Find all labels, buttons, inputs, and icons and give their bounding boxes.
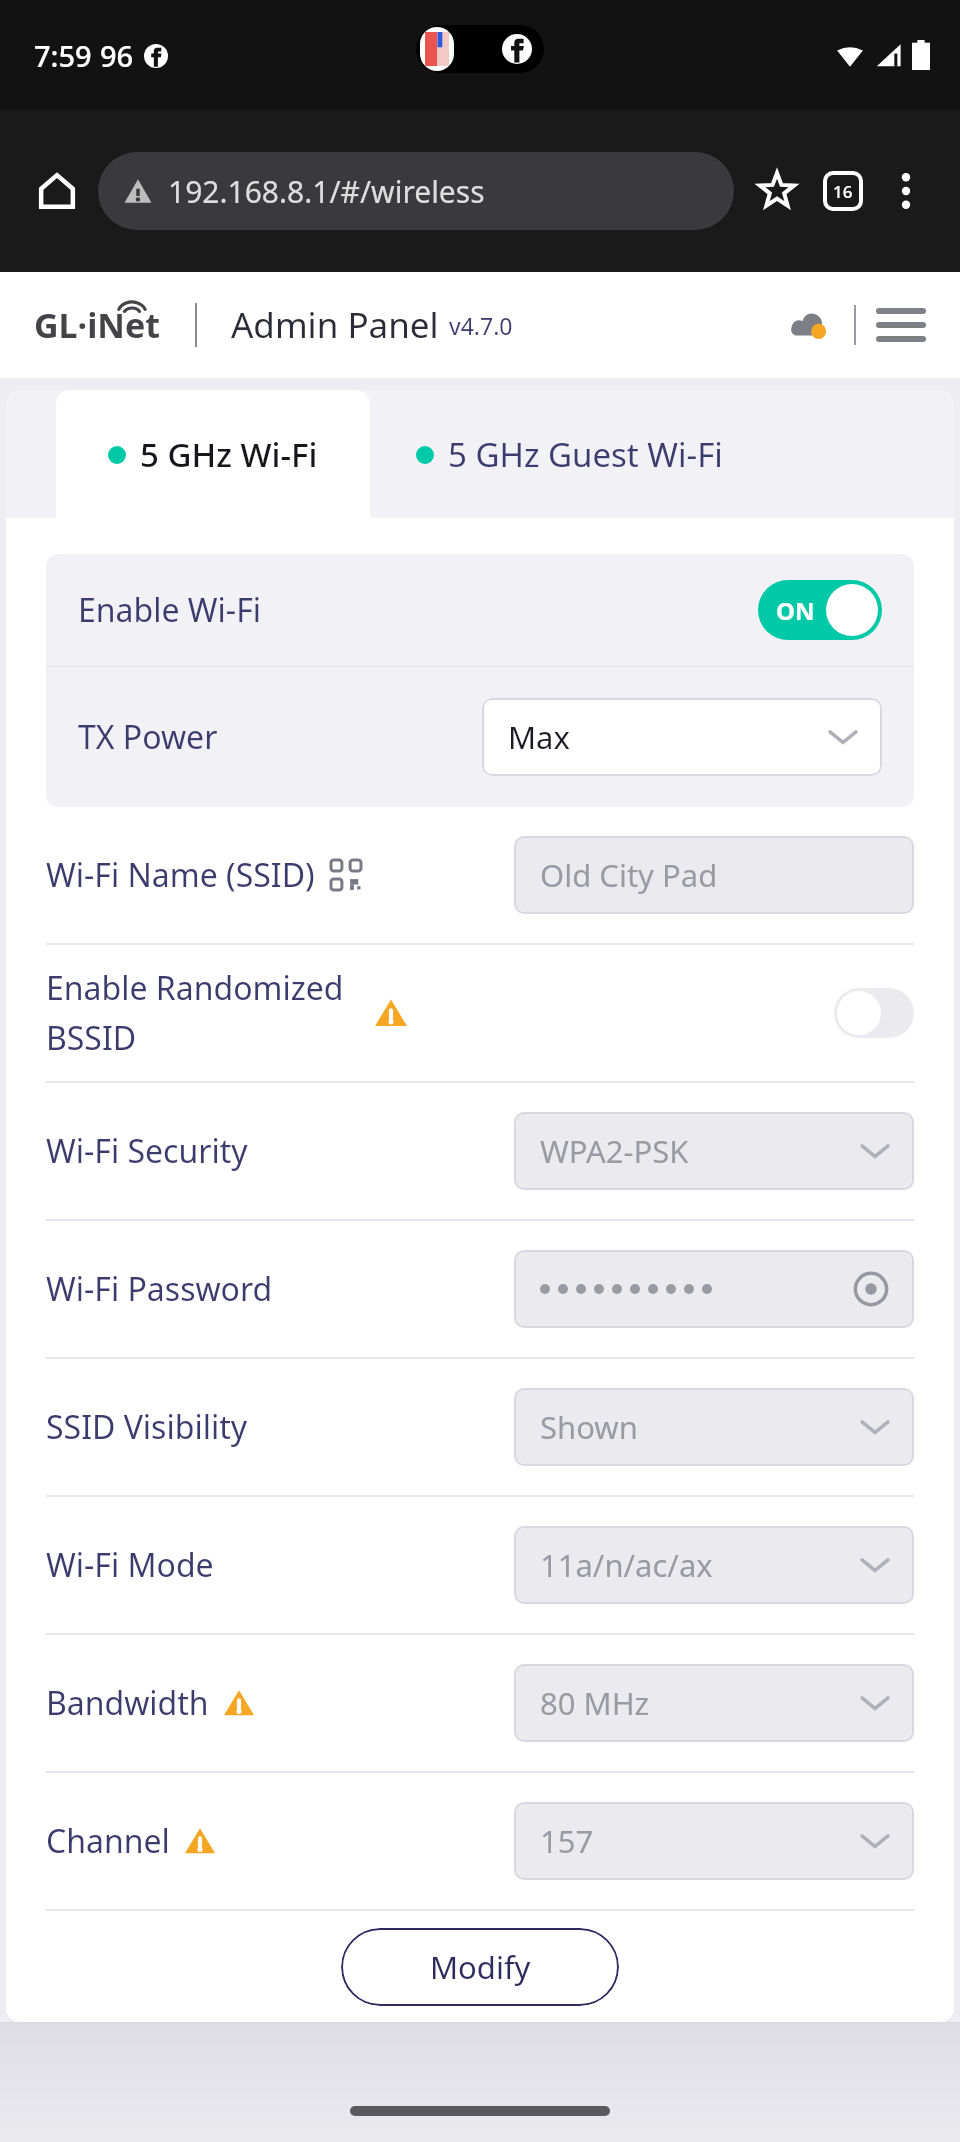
staticText: WPA2-PSK xyxy=(540,1130,689,1172)
staticText: 5 GHz Guest Wi-Fi xyxy=(448,432,723,477)
staticText: SSID Visibility xyxy=(46,1405,248,1449)
button[interactable]: Old City Pad xyxy=(514,836,914,914)
staticText: ON xyxy=(776,594,815,627)
button[interactable]: Menu xyxy=(870,294,932,356)
staticText: 96 xyxy=(100,36,134,75)
staticText: Bandwidth xyxy=(46,1681,209,1725)
button[interactable]: Bookmark xyxy=(744,158,810,224)
staticText: Admin Panel xyxy=(231,301,439,349)
staticText: 16 xyxy=(833,180,853,203)
staticText: Wi-Fi Security xyxy=(46,1129,248,1173)
staticText: Enable Wi-Fi xyxy=(78,588,262,632)
button[interactable]: 5 GHz Guest Wi-Fi xyxy=(370,390,769,518)
button[interactable]: More options xyxy=(876,161,936,221)
button[interactable]: WPA2-PSK xyxy=(514,1112,914,1190)
button[interactable]: Max xyxy=(482,698,882,776)
button[interactable]: Wi-Fi Security xyxy=(6,1083,954,1219)
button[interactable]: 5 GHz Wi-Fi xyxy=(56,390,370,518)
button[interactable]: Wi-Fi Mode xyxy=(6,1497,954,1633)
staticText: BSSID xyxy=(46,1016,137,1060)
staticText: Enable Randomized xyxy=(46,966,344,1010)
staticText: GL·iNet xyxy=(34,302,161,348)
other: Show password xyxy=(854,1272,888,1306)
button[interactable]: Modify xyxy=(341,1928,619,2006)
staticText: Modify xyxy=(430,1946,531,1988)
staticText: 192.168.8.1/#/wireless xyxy=(168,171,485,212)
staticText: Shown xyxy=(540,1406,638,1448)
button[interactable]: Bandwidth xyxy=(6,1635,954,1771)
button[interactable]: Channel xyxy=(6,1773,954,1909)
staticText: v4.7.0 xyxy=(449,310,513,341)
staticText: Max xyxy=(508,716,570,758)
staticText: 157 xyxy=(540,1820,594,1862)
button[interactable]: 157 xyxy=(514,1802,914,1880)
button[interactable]: 80 MHz xyxy=(514,1664,914,1742)
staticText: 11a/n/ac/ax xyxy=(540,1544,713,1586)
staticText: Wi-Fi Mode xyxy=(46,1543,214,1587)
button[interactable]: Wi-Fi Name (SSID) xyxy=(6,807,954,943)
button[interactable]: Shown xyxy=(514,1388,914,1466)
staticText: Wi-Fi Password xyxy=(46,1267,273,1311)
button[interactable]: Show password xyxy=(514,1250,914,1328)
button[interactable]: 11a/n/ac/ax xyxy=(514,1526,914,1604)
button[interactable] xyxy=(834,988,914,1038)
button[interactable]: Wi-Fi Password xyxy=(6,1221,954,1357)
staticText: 5 GHz Wi-Fi xyxy=(140,432,318,477)
button[interactable]: Enable Wi-Fi xyxy=(46,554,914,666)
staticText: Channel xyxy=(46,1819,170,1863)
staticText: Wi-Fi Name (SSID) xyxy=(46,853,315,897)
staticText: 80 MHz xyxy=(540,1682,650,1724)
staticText: TX Power xyxy=(78,715,218,759)
button[interactable]: SSID Visibility xyxy=(6,1359,954,1495)
button[interactable]: Home xyxy=(24,158,90,224)
button[interactable]: Tabs xyxy=(810,158,876,224)
staticText: 7:59 xyxy=(34,36,92,75)
button[interactable]: Cloud xyxy=(778,294,840,356)
button[interactable]: 192.168.8.1/#/wireless xyxy=(98,152,734,230)
staticText: Old City Pad xyxy=(540,854,718,896)
button[interactable]: Enable Randomized xyxy=(6,945,954,1081)
